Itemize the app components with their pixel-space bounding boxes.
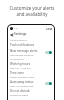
button[interactable]: Toggle on: [45, 82, 52, 85]
staticText: Pacific Standard Time: [10, 75, 35, 78]
button[interactable]: Toggle on: [45, 51, 52, 54]
staticText: 9:00 AM – 5:00 PM: [10, 66, 31, 69]
staticText: Silence all alerts: [10, 93, 28, 96]
staticText: After 15 minutes idle: [10, 84, 34, 87]
button[interactable]: Working hours: [8, 62, 54, 69]
staticText: Settings: [14, 32, 27, 36]
button[interactable]: New message alerts: [8, 49, 54, 56]
button[interactable]: Do not disturb: [8, 89, 54, 96]
staticText: Working hours: [10, 62, 31, 66]
staticText: NOTIFICATIONS: [10, 39, 28, 42]
button[interactable]: Back: [10, 33, 13, 36]
staticText: 9:41: [14, 27, 19, 30]
staticText: AVAILABILITY: [10, 58, 25, 61]
staticText: New message alerts: [10, 49, 38, 53]
button[interactable]: Push notifications: [8, 43, 54, 47]
staticText: Auto-away status: [10, 80, 34, 84]
staticText: Do not disturb: [10, 89, 30, 93]
staticText: Customize your alerts and availability: [2, 5, 62, 17]
staticText: Get notified instantly: [10, 53, 34, 56]
staticText: Time zone: [10, 71, 24, 75]
button[interactable]: Time zone: [8, 71, 54, 78]
button[interactable]: Auto-away status: [8, 80, 54, 87]
staticText: Push notifications: [10, 43, 35, 47]
